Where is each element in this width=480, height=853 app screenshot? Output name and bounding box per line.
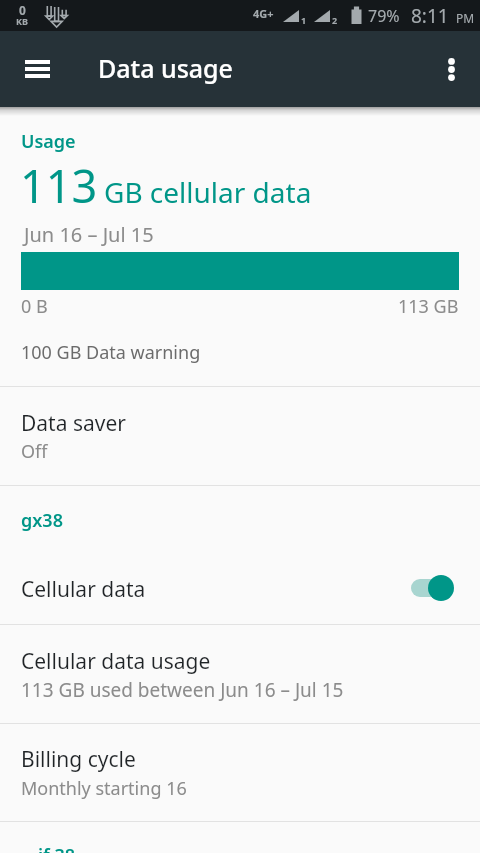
staticText: 113 GB [398, 294, 459, 319]
staticText: 8:11 [411, 3, 449, 29]
staticText: 1 [301, 14, 307, 26]
button[interactable]: Cellular data [0, 556, 480, 624]
staticText: Cellular data usage [21, 647, 211, 676]
button[interactable]: Data saver [0, 387, 480, 485]
staticText: 4G+ [253, 6, 274, 21]
staticText: Billing cycle [21, 745, 136, 774]
button[interactable]: Billing cycle [0, 724, 480, 821]
staticText: 113 [20, 155, 98, 216]
staticText: 79% [368, 5, 400, 27]
staticText: 2 [332, 14, 338, 26]
staticText: Monthly starting 16 [21, 776, 187, 801]
staticText: 100 GB Data warning [21, 340, 201, 365]
staticText: Data usage [98, 51, 233, 85]
staticText: GB cellular data [104, 173, 312, 211]
staticText: Usage [21, 129, 76, 154]
staticText: PM [456, 10, 475, 26]
staticText: 0 B [21, 294, 48, 319]
button[interactable]: Cellular data usage [0, 625, 480, 723]
button[interactable]: Open navigation menu [9, 38, 66, 100]
staticText: Cellular data [21, 575, 146, 604]
staticText: KB [16, 15, 28, 27]
button[interactable]: More options [428, 38, 480, 100]
staticText: 113 GB used between Jun 16 – Jul 15 [21, 677, 344, 703]
staticText: Data saver [21, 409, 126, 438]
staticText: if 38 [38, 843, 76, 853]
staticText: 0 [19, 2, 26, 18]
staticText: Jun 16 – Jul 15 [24, 221, 154, 248]
staticText: Off [21, 439, 48, 464]
staticText: gx38 [21, 508, 63, 533]
